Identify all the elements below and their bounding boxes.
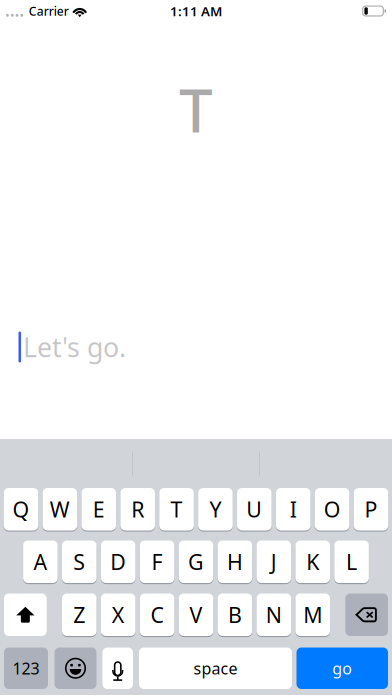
staticText: W <box>50 495 70 523</box>
staticText: Y <box>209 495 221 523</box>
button[interactable]: N <box>256 593 291 636</box>
staticText: H <box>227 548 243 576</box>
button[interactable]: Z <box>62 593 97 636</box>
button[interactable]: J <box>256 540 291 583</box>
button[interactable]: F <box>140 540 174 583</box>
button[interactable]: I <box>276 488 310 530</box>
button[interactable]: R <box>120 488 155 530</box>
staticText: I <box>290 495 297 523</box>
button[interactable]: L <box>334 540 369 583</box>
staticText: P <box>364 495 377 523</box>
staticText: space <box>193 658 237 679</box>
button[interactable]: W <box>42 488 77 530</box>
staticText: N <box>266 601 282 629</box>
button[interactable]: A <box>23 540 58 583</box>
button[interactable]: space <box>139 647 292 689</box>
staticText: 1:11 AM <box>170 2 222 20</box>
button[interactable]: K <box>295 540 330 583</box>
button[interactable]: Q <box>4 488 38 530</box>
staticText: U <box>246 495 262 523</box>
button[interactable]: T <box>159 488 194 530</box>
staticText: T <box>179 69 213 149</box>
staticText: Let's go. <box>23 329 126 365</box>
staticText: Q <box>12 495 29 523</box>
button[interactable]: O <box>315 488 349 530</box>
button[interactable]: Emoji <box>54 647 96 689</box>
staticText: A <box>33 548 47 576</box>
staticText: go <box>332 658 352 679</box>
staticText: S <box>73 548 85 576</box>
staticText: O <box>324 495 341 523</box>
staticText: X <box>112 601 125 629</box>
button[interactable]: G <box>179 540 213 583</box>
staticText: G <box>188 548 204 576</box>
button[interactable]: 123 <box>4 647 48 689</box>
button[interactable]: Dictate <box>102 647 133 689</box>
button[interactable]: V <box>179 593 213 636</box>
button[interactable]: Y <box>198 488 233 530</box>
button[interactable]: X <box>101 593 135 636</box>
staticText: J <box>271 548 277 576</box>
button[interactable]: S <box>62 540 97 583</box>
staticText: T <box>170 495 182 523</box>
staticText: V <box>189 601 202 629</box>
staticText: C <box>151 601 164 629</box>
button[interactable]: Shift <box>4 593 47 636</box>
button[interactable]: C <box>140 593 174 636</box>
button[interactable]: H <box>218 540 252 583</box>
button[interactable]: E <box>81 488 116 530</box>
staticText: L <box>346 548 357 576</box>
button[interactable]: D <box>101 540 135 583</box>
button[interactable]: M <box>295 593 330 636</box>
button[interactable]: U <box>237 488 272 530</box>
staticText: Z <box>73 601 85 629</box>
staticText: M <box>303 601 322 629</box>
staticText: F <box>152 548 163 576</box>
staticText: Carrier <box>29 3 69 19</box>
staticText: D <box>110 548 126 576</box>
staticText: 123 <box>12 658 39 679</box>
button[interactable]: P <box>354 488 388 530</box>
staticText: E <box>93 495 105 523</box>
staticText: B <box>228 601 242 629</box>
button[interactable]: Delete <box>345 593 388 636</box>
staticText: R <box>131 495 144 523</box>
button[interactable]: B <box>218 593 252 636</box>
staticText: K <box>306 548 319 576</box>
button[interactable]: go <box>296 647 388 689</box>
